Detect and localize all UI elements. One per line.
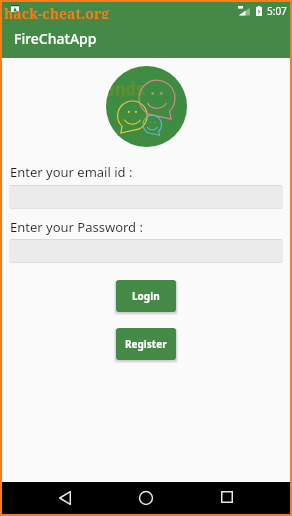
button[interactable]: Home xyxy=(124,482,168,514)
staticText: Register xyxy=(125,337,167,351)
button[interactable]: Recent apps xyxy=(205,481,249,513)
staticText: new friends xyxy=(119,67,160,77)
staticText: chat xyxy=(114,108,145,127)
button[interactable]: Back xyxy=(43,482,87,514)
button[interactable] xyxy=(9,239,283,263)
staticText: FireChatApp xyxy=(14,29,97,48)
staticText: friends xyxy=(130,124,173,140)
staticText: talk xyxy=(156,72,172,83)
staticText: 5:07 xyxy=(267,4,287,18)
button[interactable]: Register xyxy=(116,328,176,360)
staticText: Login xyxy=(132,289,160,303)
staticText: hack-cheat.org xyxy=(4,4,110,21)
staticText: Enter your Password : xyxy=(10,218,143,236)
button[interactable]: Login xyxy=(116,280,176,312)
button[interactable] xyxy=(9,185,283,209)
staticText: Enter your email id : xyxy=(10,163,133,181)
staticText: ends xyxy=(106,75,144,102)
